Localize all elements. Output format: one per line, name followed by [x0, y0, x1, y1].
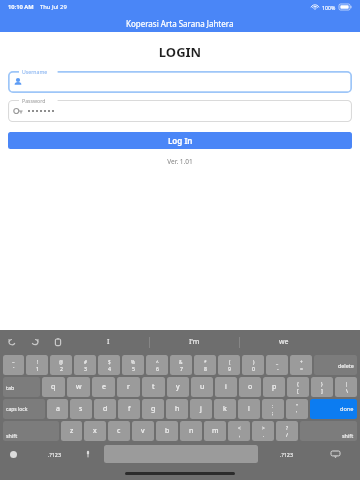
- button[interactable]: (: [218, 355, 240, 375]
- button[interactable]: Undo: [5, 335, 19, 349]
- button[interactable]: h: [166, 399, 188, 419]
- button[interactable]: b: [156, 421, 178, 441]
- staticText: 5: [132, 365, 135, 372]
- staticText: c: [117, 426, 121, 436]
- button[interactable]: Hide keyboard: [313, 442, 358, 466]
- button[interactable]: v: [132, 421, 154, 441]
- staticText: =: [300, 365, 303, 372]
- staticText: !: [37, 359, 39, 365]
- button[interactable]: f: [118, 399, 140, 419]
- staticText: 2: [60, 365, 63, 372]
- button[interactable]: ?: [276, 421, 298, 441]
- button[interactable]: I: [102, 335, 115, 349]
- staticText: I: [107, 337, 110, 347]
- button[interactable]: delete: [314, 355, 357, 375]
- button[interactable]: Change keyboard: [2, 442, 36, 466]
- button[interactable]: caps lock: [3, 399, 45, 419]
- staticText: h: [175, 404, 180, 414]
- button[interactable]: |: [335, 377, 357, 397]
- staticText: r: [127, 382, 130, 392]
- button[interactable]: I'm: [184, 335, 205, 349]
- button[interactable]: we: [274, 335, 294, 349]
- staticText: 4: [108, 365, 111, 372]
- button[interactable]: tab: [3, 377, 40, 397]
- button[interactable]: o: [239, 377, 261, 397]
- button[interactable]: t: [142, 377, 165, 397]
- staticText: delete: [338, 362, 354, 369]
- button[interactable]: #: [74, 355, 96, 375]
- button[interactable]: c: [108, 421, 130, 441]
- staticText: }: [321, 381, 323, 387]
- button[interactable]: >: [252, 421, 274, 441]
- staticText: .: [263, 431, 265, 438]
- button[interactable]: :: [262, 399, 284, 419]
- staticText: Ver. 1.01: [0, 157, 360, 166]
- button[interactable]: }: [311, 377, 333, 397]
- button[interactable]: .?123: [36, 442, 73, 466]
- button[interactable]: .?123: [260, 442, 313, 466]
- staticText: ]: [321, 387, 323, 394]
- button[interactable]: d: [94, 399, 116, 419]
- staticText: v: [141, 426, 145, 436]
- staticText: (: [229, 359, 231, 365]
- button[interactable]: w: [67, 377, 90, 397]
- button[interactable]: *: [194, 355, 216, 375]
- button[interactable]: %: [122, 355, 144, 375]
- button[interactable]: shift: [300, 421, 357, 441]
- staticText: #: [84, 359, 87, 365]
- button[interactable]: ~: [3, 355, 24, 375]
- staticText: 9: [228, 365, 231, 372]
- button[interactable]: i: [215, 377, 237, 397]
- staticText: t: [152, 382, 155, 392]
- staticText: caps lock: [6, 406, 28, 413]
- button[interactable]: $: [98, 355, 120, 375]
- button[interactable]: +: [290, 355, 312, 375]
- staticText: Thu Jul 29: [40, 3, 67, 11]
- button[interactable]: shift: [3, 421, 59, 441]
- button[interactable]: _: [266, 355, 288, 375]
- staticText: `: [13, 365, 15, 372]
- staticText: ~: [12, 359, 15, 365]
- button[interactable]: &: [170, 355, 192, 375]
- staticText: p: [272, 382, 277, 392]
- button[interactable]: ": [286, 399, 308, 419]
- staticText: |: [345, 381, 348, 387]
- button[interactable]: Paste: [51, 335, 65, 349]
- button[interactable]: y: [167, 377, 189, 397]
- button[interactable]: x: [84, 421, 106, 441]
- button[interactable]: e: [92, 377, 115, 397]
- button[interactable]: Username: [8, 71, 352, 93]
- staticText: e: [102, 382, 106, 392]
- button[interactable]: Log In: [8, 132, 352, 149]
- button[interactable]: Redo: [28, 335, 42, 349]
- button[interactable]: <: [228, 421, 250, 441]
- button[interactable]: a: [47, 399, 68, 419]
- button[interactable]: m: [204, 421, 226, 441]
- button[interactable]: u: [191, 377, 213, 397]
- button[interactable]: g: [142, 399, 164, 419]
- button[interactable]: {: [287, 377, 309, 397]
- button[interactable]: k: [214, 399, 236, 419]
- button[interactable]: @: [50, 355, 72, 375]
- button[interactable]: s: [70, 399, 92, 419]
- staticText: s: [79, 404, 83, 414]
- button[interactable]: j: [190, 399, 212, 419]
- button[interactable]: q: [42, 377, 65, 397]
- button[interactable]: ^: [146, 355, 168, 375]
- staticText: /: [286, 431, 288, 438]
- staticText: 0: [252, 365, 255, 372]
- button[interactable]: p: [263, 377, 285, 397]
- button[interactable]: Voice input: [73, 442, 102, 466]
- staticText: %: [131, 359, 135, 365]
- button[interactable]: z: [61, 421, 82, 441]
- button[interactable]: r: [117, 377, 140, 397]
- button[interactable]: n: [180, 421, 202, 441]
- button[interactable]: !: [26, 355, 48, 375]
- button[interactable]: l: [238, 399, 260, 419]
- button[interactable]: done: [310, 399, 357, 419]
- staticText: :: [272, 403, 274, 409]
- staticText: n: [189, 426, 194, 436]
- button[interactable]: Show password: [8, 100, 352, 122]
- button[interactable]: ): [242, 355, 264, 375]
